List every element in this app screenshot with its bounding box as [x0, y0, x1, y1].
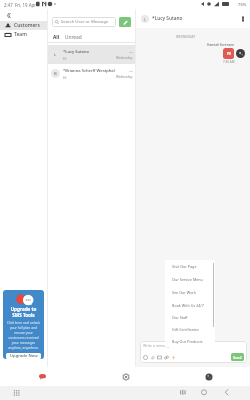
staticText: Write a message...: [143, 343, 174, 348]
staticText: Upgrade Now: [10, 353, 38, 359]
button[interactable]: Buy Our Products: [165, 335, 215, 347]
button[interactable]: Insert image: [157, 355, 162, 360]
button[interactable]: Send: [231, 353, 244, 361]
staticText: Book With Us 24/7: [172, 303, 204, 308]
staticText: —: [129, 68, 133, 73]
button[interactable]: Team: [0, 30, 47, 39]
button[interactable]: Messages: [0, 367, 84, 386]
button[interactable]: More options: [238, 14, 247, 23]
staticText: Upgrade to SMS Tools: [6, 306, 41, 319]
button[interactable]: Gift Certificates: [165, 323, 215, 335]
button[interactable]: New message: [119, 17, 131, 27]
button[interactable]: Customers: [0, 21, 47, 30]
button[interactable]: Our Service Menu: [165, 273, 215, 286]
staticText: —: [129, 49, 133, 54]
staticText: Buy Our Products: [172, 339, 203, 344]
staticText: Send: [233, 355, 242, 360]
button[interactable]: L: [48, 45, 135, 64]
button[interactable]: Visit Our Page: [165, 260, 215, 273]
staticText: 2:47 Fri, 19 Apr: [4, 2, 37, 8]
staticText: Wednesday: [116, 75, 133, 79]
staticText: PD: [227, 52, 231, 56]
button[interactable]: Collapse sidebar: [0, 9, 47, 21]
button[interactable]: See Our Work: [165, 286, 215, 299]
staticText: Gift Certificates: [172, 327, 199, 332]
staticText: Our Service Menu: [172, 277, 203, 282]
staticText: Customers: [14, 22, 40, 29]
staticText: Unread: [65, 34, 82, 41]
staticText: Search User or Message: [61, 19, 109, 25]
staticText: B: [54, 71, 57, 77]
button[interactable]: Upgrade Now: [6, 353, 41, 359]
button[interactable]: Insert link: [164, 355, 169, 360]
button[interactable]: Attach file: [150, 355, 155, 360]
staticText: L: [54, 52, 57, 58]
staticText: 7:36 AM: [223, 60, 235, 64]
staticText: Click here and unlock your full plan and…: [6, 320, 41, 350]
staticText: Visit Our Page: [172, 264, 197, 269]
button[interactable]: Our Staff: [165, 311, 215, 323]
staticText: Our Staff: [172, 315, 188, 320]
staticText: *Lucy Sutano: [63, 49, 90, 55]
staticText: Hi: [63, 56, 67, 61]
button[interactable]: Quick replies: [171, 355, 176, 360]
button[interactable]: Profile: [167, 367, 250, 386]
button[interactable]: B: [48, 64, 135, 83]
staticText: See Our Work: [172, 290, 196, 295]
staticText: All: [53, 34, 60, 41]
staticText: L: [144, 17, 146, 22]
button[interactable]: Search User or Message: [52, 17, 116, 27]
button[interactable]: Book With Us 24/7: [165, 299, 215, 311]
staticText: *Brianna Scherff Westphal: [63, 68, 115, 74]
staticText: Team: [14, 31, 27, 38]
button[interactable]: Unread: [64, 33, 83, 42]
button[interactable]: Contacts: [84, 367, 167, 386]
staticText: Wednesday: [116, 56, 133, 60]
staticText: WEDNESDAY: [142, 35, 229, 39]
button[interactable]: Emoji: [143, 355, 148, 360]
staticText: Hi: [63, 75, 67, 80]
staticText: *Lucy Sutano: [152, 15, 183, 22]
staticText: Hannah Sorensen: [207, 43, 235, 47]
staticText: 76%: [238, 2, 247, 8]
button[interactable]: All: [52, 33, 61, 42]
